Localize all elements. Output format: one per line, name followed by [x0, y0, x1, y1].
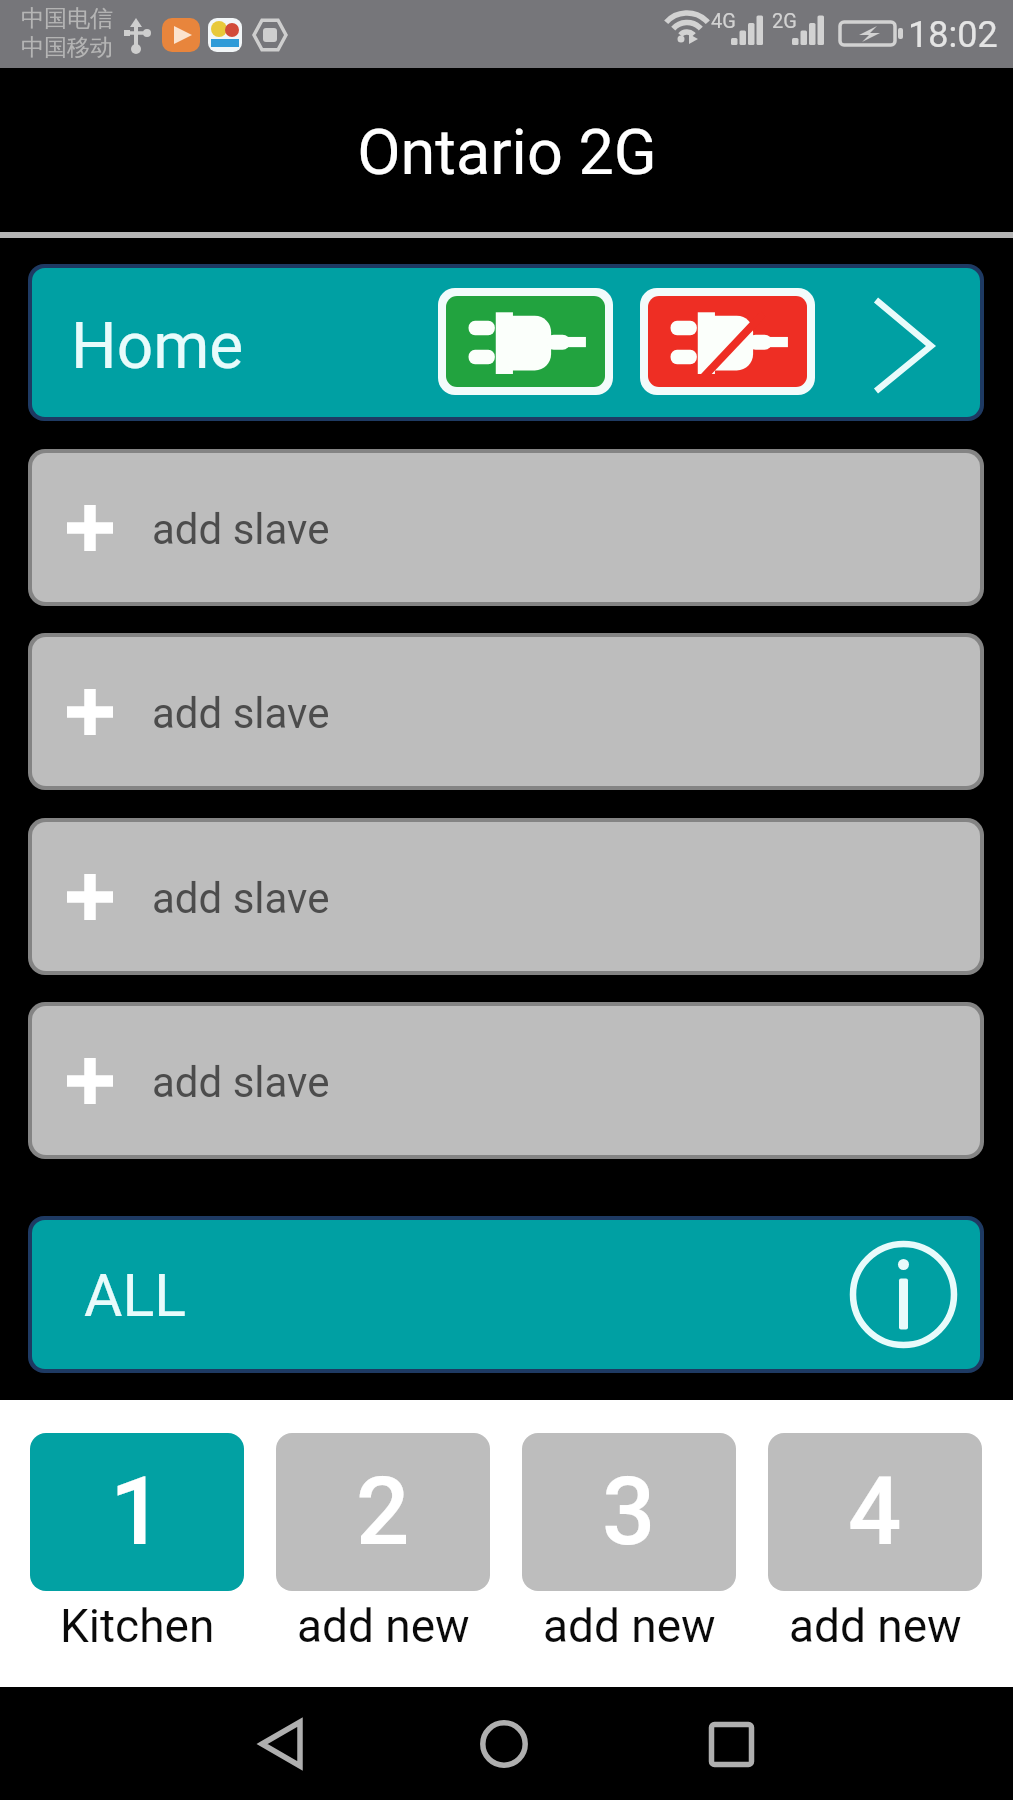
- staticText: 2G: [772, 9, 797, 32]
- button[interactable]: All on: [438, 288, 613, 395]
- button[interactable]: Home: [459, 1699, 549, 1789]
- staticText: Ontario 2G: [357, 116, 657, 190]
- staticText: add slave: [152, 874, 330, 923]
- button[interactable]: ALL: [28, 1216, 984, 1373]
- staticText: add slave: [152, 689, 330, 738]
- staticText: 2: [356, 1457, 410, 1567]
- button[interactable]: add slave: [28, 449, 984, 606]
- staticText: ALL: [84, 1261, 187, 1330]
- staticText: 18:02: [908, 14, 998, 56]
- staticText: add new: [789, 1599, 962, 1653]
- staticText: 4: [848, 1457, 902, 1567]
- button[interactable]: 2: [276, 1433, 490, 1653]
- staticText: add slave: [152, 1058, 330, 1107]
- button[interactable]: add slave: [28, 633, 984, 790]
- button[interactable]: All off: [640, 288, 815, 395]
- staticText: add slave: [152, 505, 330, 554]
- staticText: 3: [602, 1457, 656, 1567]
- staticText: 1: [110, 1457, 164, 1567]
- button[interactable]: add slave: [28, 818, 984, 975]
- button[interactable]: add slave: [28, 1002, 984, 1159]
- staticText: 4G: [711, 9, 736, 32]
- staticText: Home: [71, 309, 244, 384]
- button[interactable]: 4: [768, 1433, 982, 1653]
- button[interactable]: Back: [236, 1699, 326, 1789]
- staticText: add new: [543, 1599, 716, 1653]
- button[interactable]: Open room: [852, 282, 980, 411]
- button[interactable]: 1: [30, 1433, 244, 1653]
- button[interactable]: 3: [522, 1433, 736, 1653]
- button[interactable]: Info: [845, 1236, 962, 1353]
- staticText: 中国电信: [21, 4, 113, 33]
- button[interactable]: Recent apps: [686, 1699, 776, 1789]
- staticText: add new: [297, 1599, 470, 1653]
- button[interactable]: Home: [28, 264, 984, 421]
- staticText: Kitchen: [60, 1599, 215, 1653]
- staticText: 中国移动: [21, 33, 113, 62]
